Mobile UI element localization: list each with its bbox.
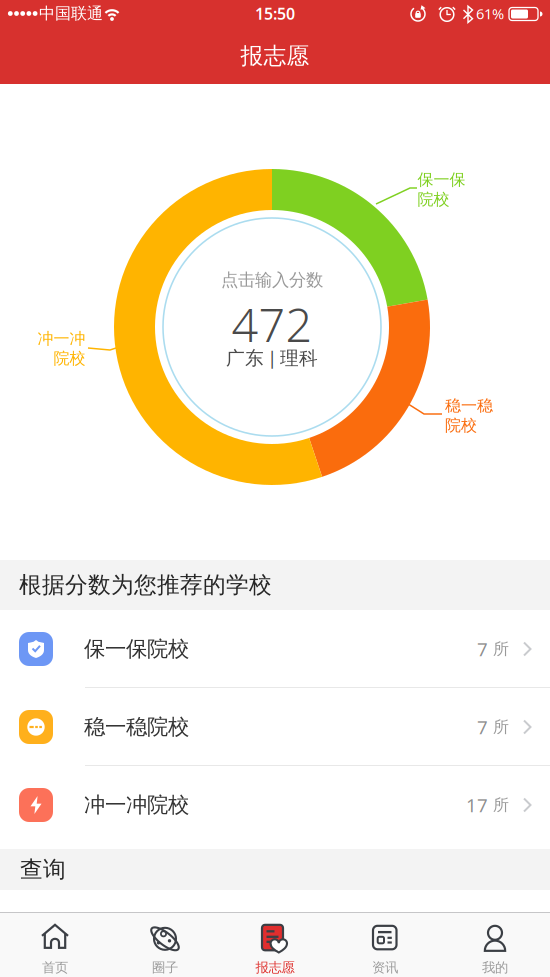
staticText: 圈子 <box>152 959 178 976</box>
staticText: 查询 <box>20 856 66 883</box>
staticText: 稳一稳 <box>445 396 493 415</box>
staticText: 所 <box>493 795 509 815</box>
staticText: 472 <box>231 293 312 355</box>
staticText: 院校 <box>53 348 85 368</box>
button[interactable]: 点击输入分数 <box>162 217 382 437</box>
staticText: 61% <box>476 4 504 23</box>
staticText: 资讯 <box>372 959 398 976</box>
staticText: 根据分数为您推荐的学校 <box>19 571 272 599</box>
staticText: 首页 <box>42 959 68 976</box>
staticText: 15:50 <box>255 3 295 24</box>
staticText: 冲一冲 <box>37 329 85 348</box>
staticText: 保一保 <box>417 170 465 189</box>
button[interactable]: 资讯 <box>330 913 440 977</box>
staticText: 报志愿 <box>255 959 294 976</box>
staticText: 我的 <box>482 959 508 976</box>
staticText: 保一保院校 <box>84 636 189 662</box>
button[interactable]: 报志愿 <box>220 913 330 977</box>
button[interactable]: 冲一冲院校 <box>0 766 550 844</box>
staticText: 冲一冲院校 <box>84 792 189 818</box>
staticText: 所 <box>493 717 509 737</box>
staticText: 院校 <box>417 189 449 209</box>
staticText: 所 <box>493 639 509 659</box>
staticText: 报志愿 <box>240 42 309 70</box>
staticText: 稳一稳院校 <box>84 714 189 740</box>
button[interactable]: 保一保院校 <box>0 610 550 688</box>
button[interactable]: 我的 <box>440 913 550 977</box>
staticText: 7 <box>477 715 488 739</box>
staticText: 7 <box>477 637 488 661</box>
staticText: 广东 | 理科 <box>226 345 318 370</box>
button[interactable]: 圈子 <box>110 913 220 977</box>
staticText: 17 <box>466 793 488 817</box>
staticText: 点击输入分数 <box>221 269 323 291</box>
staticText: 中国联通 <box>39 4 103 23</box>
staticText: 院校 <box>445 415 477 435</box>
button[interactable]: 稳一稳院校 <box>0 688 550 766</box>
button[interactable]: 首页 <box>0 913 110 977</box>
